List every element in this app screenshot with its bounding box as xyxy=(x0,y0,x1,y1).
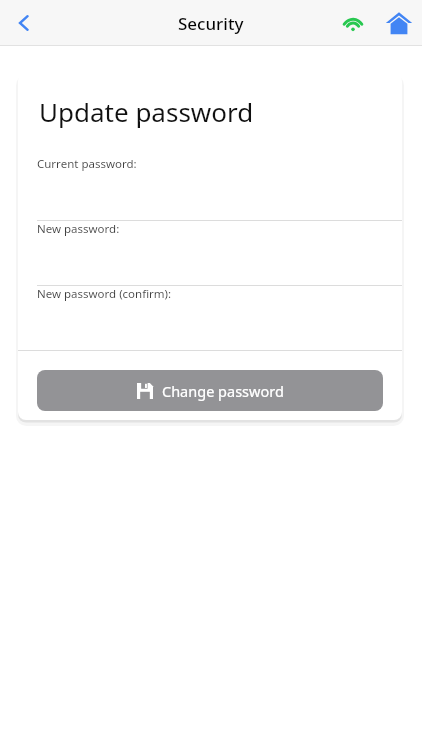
button[interactable]: Change password xyxy=(37,370,383,411)
button[interactable]: Home xyxy=(380,4,418,42)
button[interactable]: New password (confirm): xyxy=(18,286,402,350)
staticText: Change password xyxy=(162,381,284,401)
staticText: Security xyxy=(178,12,244,35)
button[interactable]: Back xyxy=(2,1,46,45)
button[interactable]: Network status xyxy=(334,4,372,42)
staticText: New password: xyxy=(37,221,120,237)
staticText: New password (confirm): xyxy=(37,286,172,302)
button[interactable]: Current password: xyxy=(18,156,402,220)
staticText: Current password: xyxy=(37,156,137,172)
staticText: Update password xyxy=(39,94,254,129)
button[interactable]: New password: xyxy=(18,221,402,285)
